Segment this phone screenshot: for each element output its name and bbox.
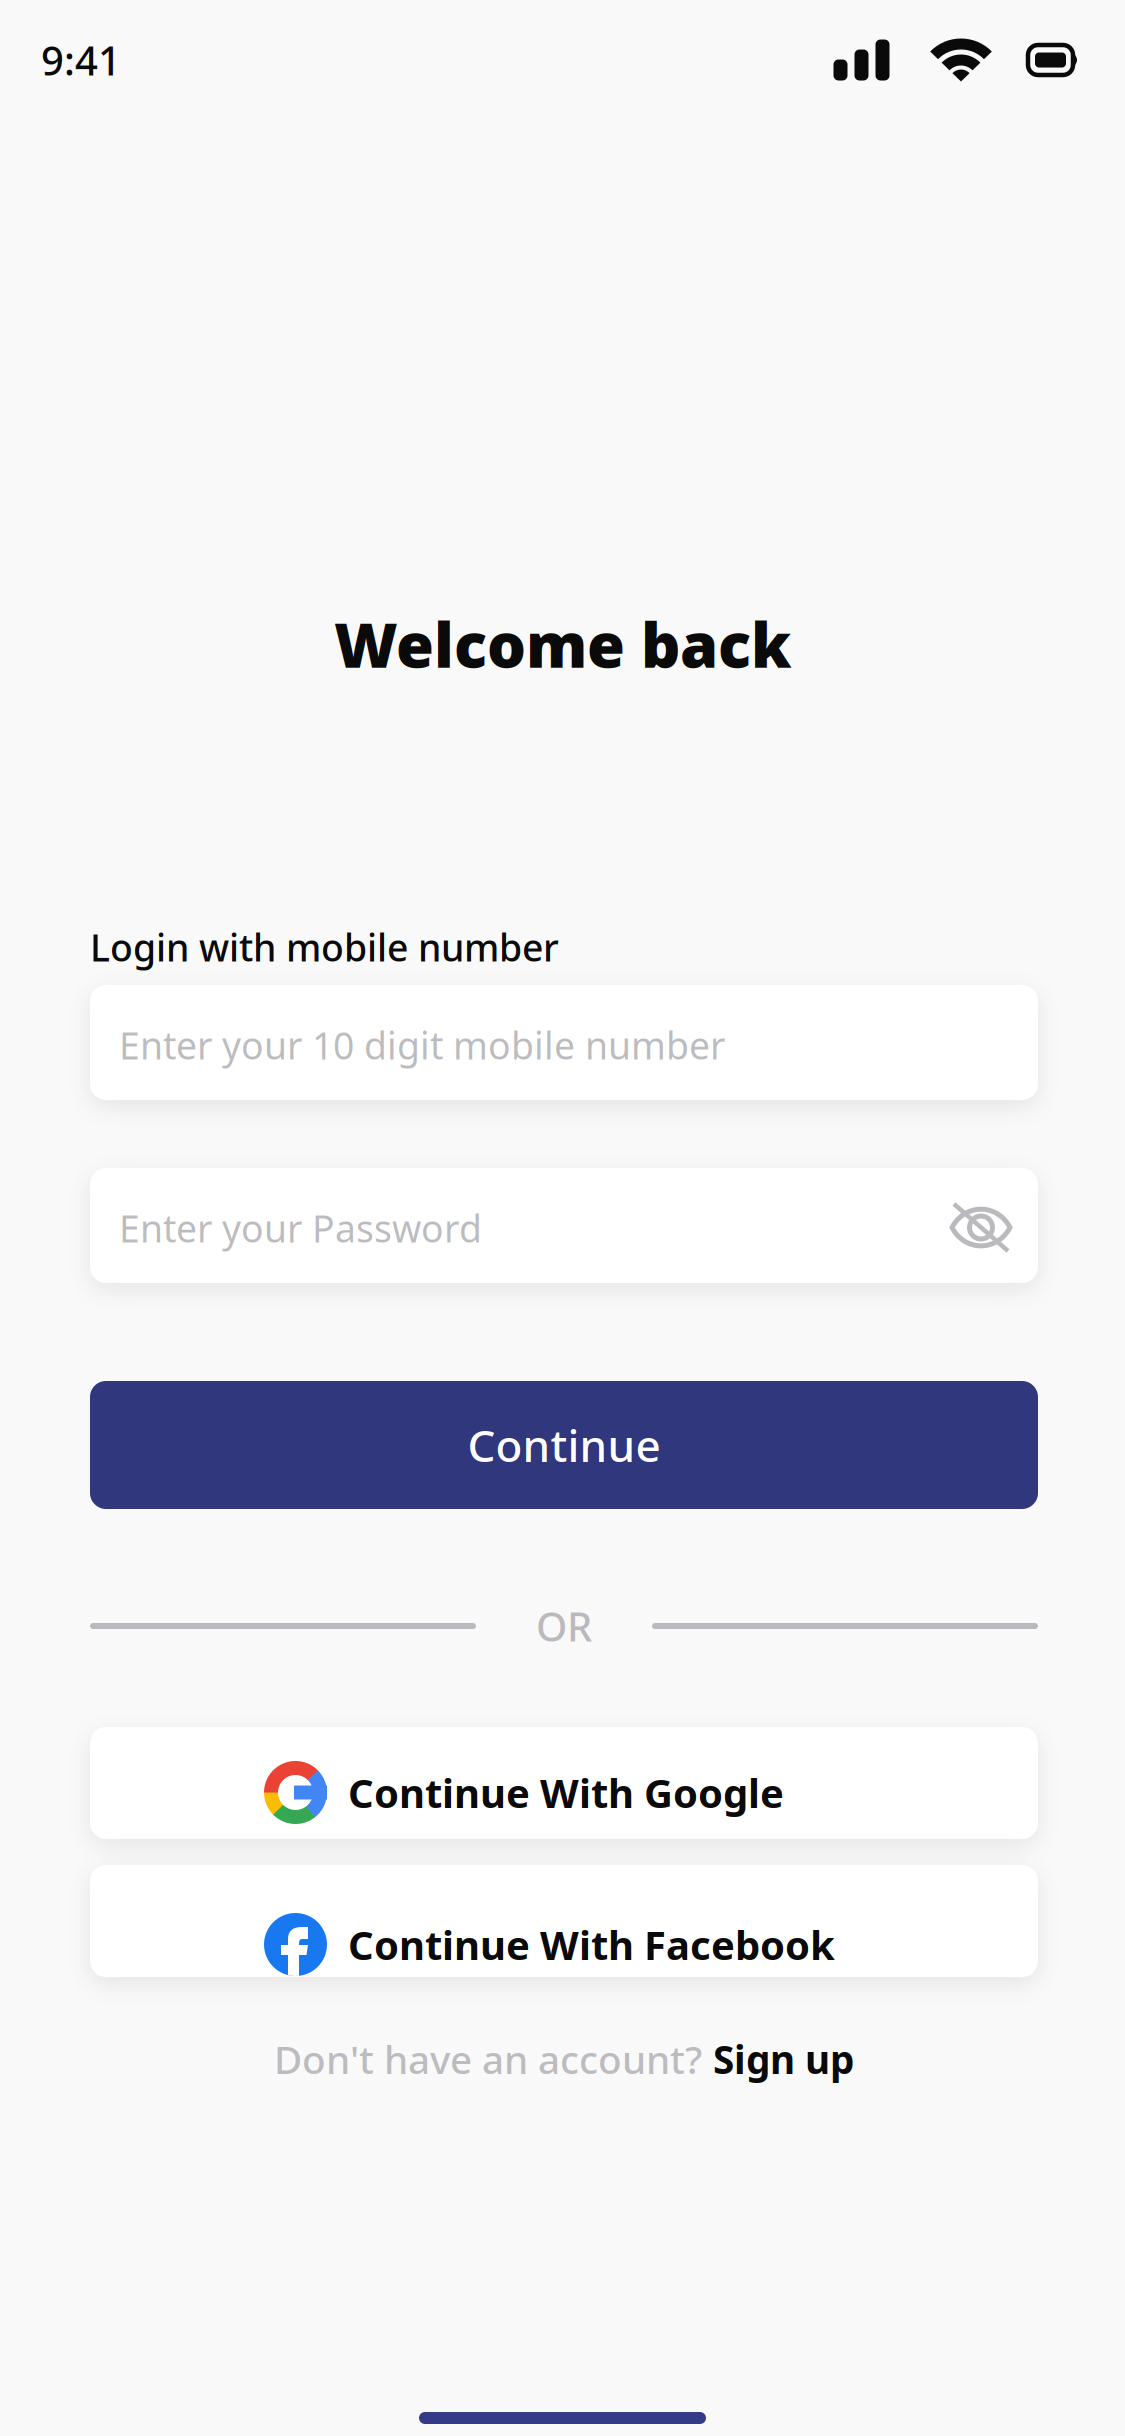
staticText: Enter your 10 digit mobile number: [119, 1020, 725, 1070]
staticText: Welcome back: [334, 603, 791, 685]
staticText: Continue With Facebook: [348, 1918, 835, 1971]
staticText: 9:41: [41, 33, 121, 86]
button[interactable]: Show password: [950, 1204, 1012, 1252]
staticText: Enter your Password: [119, 1203, 482, 1253]
button[interactable]: Don't have an account?: [90, 2033, 1038, 2085]
staticText: OR: [536, 1599, 592, 1652]
staticText: Continue: [467, 1416, 660, 1474]
button[interactable]: Continue With Google: [90, 1727, 1038, 1839]
button[interactable]: Continue: [90, 1381, 1038, 1509]
staticText: Login with mobile number: [90, 922, 559, 972]
button[interactable]: Continue With Facebook: [90, 1865, 1038, 1977]
staticText: Continue With Google: [348, 1766, 784, 1819]
staticText: Sign up: [713, 2033, 854, 2085]
staticText: Don't have an account?: [274, 2033, 702, 2085]
